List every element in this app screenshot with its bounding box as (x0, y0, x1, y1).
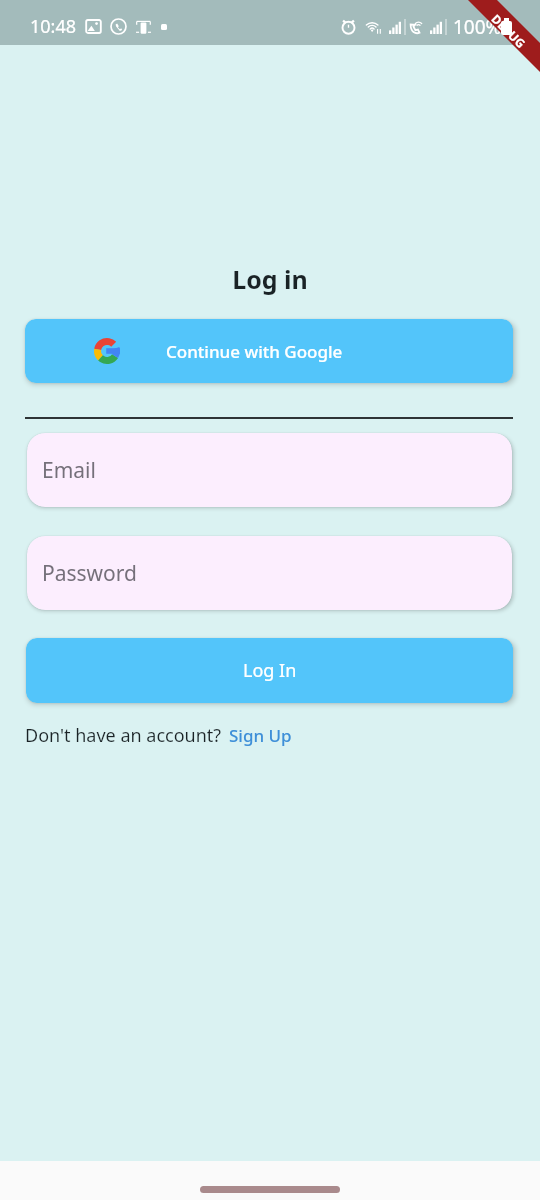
staticText: Log in (0, 262, 540, 296)
staticText: Continue with Google (166, 340, 343, 363)
staticText: 10:48 (30, 14, 77, 39)
button[interactable]: Continue with Google (25, 319, 513, 383)
button[interactable]: Log In (26, 638, 513, 703)
staticText: 100% (453, 14, 502, 40)
button[interactable]: Sign Up (229, 724, 292, 747)
staticText: Password (42, 559, 137, 588)
staticText: Email (42, 456, 96, 485)
button[interactable]: Email (27, 433, 512, 507)
staticText: Sign Up (229, 724, 292, 747)
staticText: DEBUG (488, 10, 529, 51)
staticText: Don't have an account? (25, 723, 222, 748)
other: Debug banner (0, 0, 540, 1200)
button[interactable]: Password (27, 536, 512, 610)
staticText: Log In (243, 658, 297, 683)
